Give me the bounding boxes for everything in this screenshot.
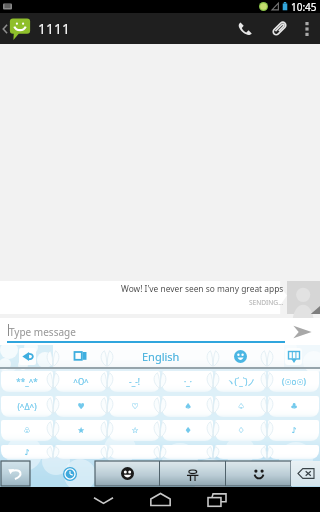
button[interactable]: Home: [140, 487, 180, 512]
button[interactable]: Call: [228, 13, 262, 44]
staticText: ☆: [131, 426, 139, 435]
button[interactable]: ♪: [1, 445, 53, 459]
staticText: ·_·: [184, 376, 192, 387]
button[interactable]: ♣: [268, 396, 319, 417]
staticText: ♪: [24, 448, 30, 457]
staticText: 1111: [38, 19, 71, 38]
button[interactable]: ♪: [268, 420, 319, 441]
button[interactable]: Send: [284, 318, 320, 345]
button[interactable]: ♢: [215, 420, 266, 441]
staticText: ^O^: [73, 376, 89, 387]
button[interactable]: ★: [55, 420, 107, 441]
staticText: English: [142, 349, 180, 364]
staticText: ♡: [131, 402, 139, 411]
button[interactable]: (☉o☉): [268, 371, 319, 392]
staticText: ♤: [237, 402, 245, 411]
button[interactable]: smile2: [226, 461, 291, 486]
staticText: Type message: [9, 325, 76, 339]
button[interactable]: ♧: [1, 420, 53, 441]
button[interactable]: [215, 445, 266, 459]
button[interactable]: ♡: [109, 396, 160, 417]
staticText: ♢: [237, 426, 245, 435]
button[interactable]: [268, 445, 319, 459]
button[interactable]: Keyboard: [267, 345, 320, 368]
button[interactable]: (^Δ^): [1, 396, 53, 417]
button[interactable]: person: [160, 461, 225, 486]
button[interactable]: ♤: [215, 396, 266, 417]
button[interactable]: More options: [296, 13, 318, 44]
button[interactable]: Layout: [54, 345, 107, 368]
staticText: ♠: [184, 402, 192, 411]
staticText: ♪: [291, 426, 297, 435]
button[interactable]: [0, 318, 286, 345]
staticText: Wow! I've never seen so many great apps: [121, 283, 284, 294]
button[interactable]: [162, 445, 213, 459]
button[interactable]: Recents: [197, 487, 237, 512]
button[interactable]: Undo: [1, 461, 30, 486]
button[interactable]: [55, 445, 107, 459]
staticText: -_-!: [129, 376, 140, 387]
button[interactable]: ヽ(´_`)ノ: [215, 371, 266, 392]
button[interactable]: **_^*: [1, 371, 53, 392]
button[interactable]: Backspace: [291, 461, 320, 486]
button[interactable]: Recent: [58, 461, 82, 487]
button[interactable]: ☆: [109, 420, 160, 441]
button[interactable]: Attach: [262, 13, 296, 44]
button[interactable]: smile1: [95, 461, 159, 486]
button[interactable]: [109, 445, 160, 459]
staticText: ヽ(´_`)ノ: [226, 376, 256, 387]
button[interactable]: Input settings: [0, 345, 54, 368]
button[interactable]: ♦: [162, 420, 213, 441]
button[interactable]: Up: [0, 13, 71, 44]
staticText: ♥: [77, 402, 85, 411]
staticText: **_^*: [16, 376, 38, 387]
button[interactable]: English: [107, 345, 214, 368]
button[interactable]: ♠: [162, 396, 213, 417]
button[interactable]: -_-!: [109, 371, 160, 392]
staticText: ♦: [184, 426, 192, 435]
staticText: (☉o☉): [282, 376, 306, 387]
button[interactable]: ·_·: [162, 371, 213, 392]
staticText: 유: [186, 466, 199, 482]
staticText: (^Δ^): [17, 401, 37, 412]
staticText: SENDING…: [249, 298, 284, 307]
staticText: ♣: [290, 402, 298, 411]
button[interactable]: Emoji: [214, 345, 267, 368]
button[interactable]: ^O^: [55, 371, 107, 392]
staticText: 10:45: [291, 0, 317, 13]
button[interactable]: Back: [83, 487, 123, 512]
button[interactable]: ♥: [55, 396, 107, 417]
staticText: ♧: [23, 426, 31, 435]
staticText: ★: [77, 426, 85, 435]
